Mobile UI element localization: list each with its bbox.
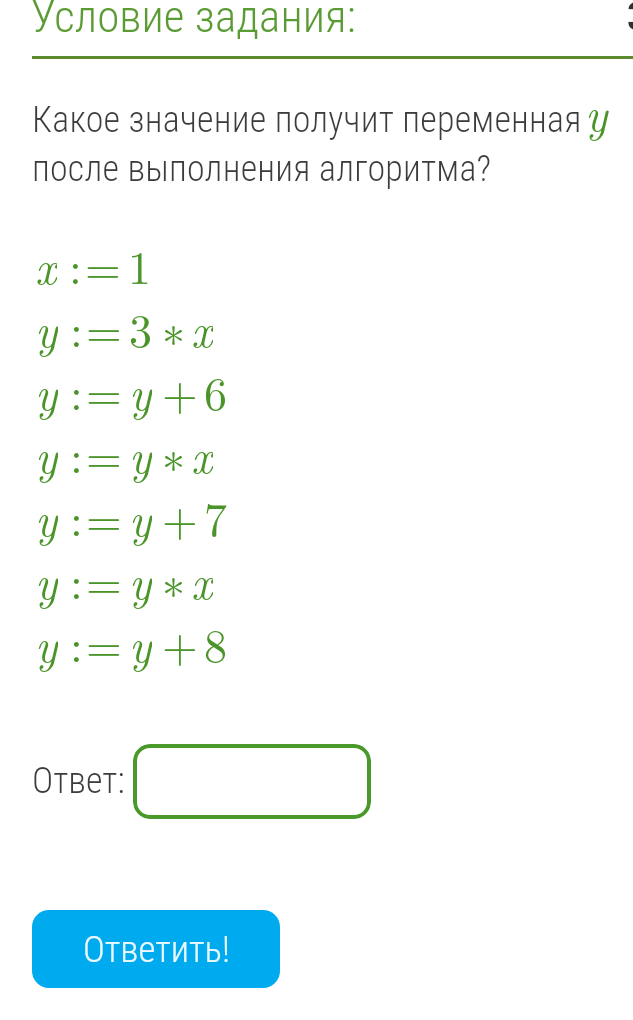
staticText: Ответить! [83, 928, 230, 971]
staticText: 3 [129, 295, 152, 358]
staticText: = [86, 421, 122, 484]
staticText: + [162, 610, 198, 673]
staticText: y [35, 358, 58, 421]
staticText: y [35, 295, 58, 358]
staticText: ∗ [162, 295, 185, 358]
staticText: 6 [204, 358, 227, 421]
staticText: : [70, 358, 83, 421]
staticText: x [191, 295, 213, 358]
staticText: = [86, 295, 122, 358]
staticText: : [70, 484, 83, 547]
button[interactable]: Answer input field [133, 744, 371, 819]
staticText: Условие задания: [31, 0, 356, 43]
staticText: y [129, 358, 152, 421]
staticText: Ответ: [32, 760, 125, 802]
staticText: y [35, 484, 58, 547]
staticText: ∗ [162, 421, 185, 484]
staticText: : [70, 547, 83, 610]
staticText: Какое значение получит переменная [32, 99, 582, 141]
staticText: y [35, 610, 58, 673]
staticText: = [86, 610, 122, 673]
staticText: : [70, 421, 83, 484]
staticText: + [162, 358, 198, 421]
staticText: 7 [204, 484, 227, 547]
staticText: ∗ [162, 547, 185, 610]
staticText: : [70, 295, 83, 358]
staticText: y [129, 610, 152, 673]
staticText: y [129, 484, 152, 547]
staticText: : [70, 610, 83, 673]
staticText: + [162, 484, 198, 547]
staticText: = [85, 232, 121, 295]
staticText: x [191, 421, 213, 484]
staticText: : [69, 232, 82, 295]
staticText: = [86, 484, 122, 547]
staticText: = [86, 358, 122, 421]
staticText: 3 [627, 0, 633, 40]
staticText: 8 [204, 610, 227, 673]
staticText: после выполнения алгоритма? [32, 148, 492, 190]
staticText: = [86, 547, 122, 610]
button[interactable]: Ответить! [32, 910, 280, 988]
staticText: 1 [128, 232, 151, 295]
staticText: y [129, 421, 152, 484]
staticText: y [35, 421, 58, 484]
staticText: y [585, 79, 608, 144]
staticText: y [35, 547, 58, 610]
staticText: y [129, 547, 152, 610]
staticText: x [35, 232, 57, 295]
staticText: x [191, 547, 213, 610]
